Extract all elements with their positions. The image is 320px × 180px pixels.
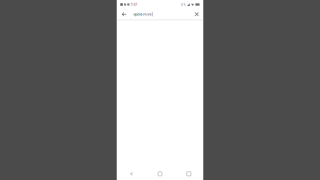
- button[interactable]: Clear search: [192, 9, 202, 19]
- button[interactable]: opera mini: [129, 9, 192, 19]
- staticText: 9:41: [130, 2, 137, 7]
- button[interactable]: Home: [146, 168, 174, 180]
- button[interactable]: Back: [119, 9, 129, 19]
- staticText: opera mini: [133, 12, 151, 17]
- staticText: LTE: [181, 3, 186, 6]
- button[interactable]: System back: [117, 168, 146, 180]
- button[interactable]: Recent apps: [174, 168, 203, 180]
